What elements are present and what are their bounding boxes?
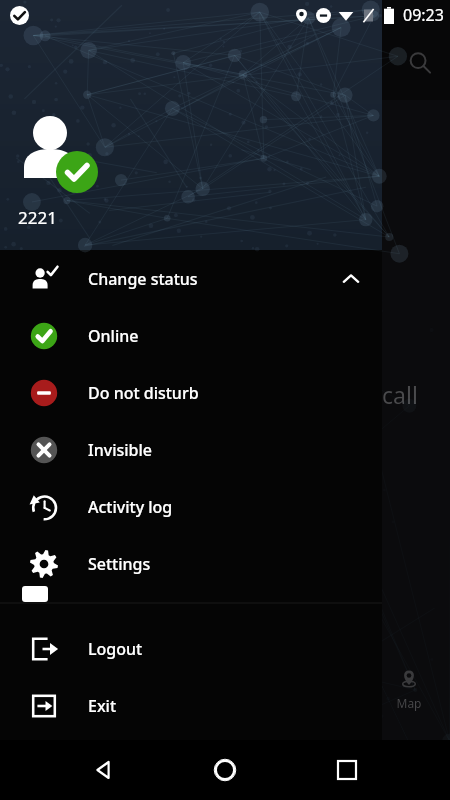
button[interactable]: Settings <box>0 535 382 592</box>
staticText: Exit <box>88 695 117 717</box>
staticText: Map <box>368 695 450 711</box>
button[interactable]: Logout <box>0 620 382 677</box>
button[interactable]: Map <box>368 662 450 724</box>
button[interactable]: Online <box>0 307 382 364</box>
staticText: 2221 <box>18 206 57 229</box>
staticText: 09:23 <box>403 4 444 26</box>
button[interactable]: Exit <box>0 677 382 734</box>
staticText: call <box>382 379 418 410</box>
button[interactable]: Home <box>200 745 250 795</box>
staticText: Activity log <box>88 496 173 518</box>
button[interactable]: Back <box>78 745 128 795</box>
button[interactable]: Search <box>400 43 440 83</box>
staticText: Logout <box>88 638 143 660</box>
staticText: Change status <box>88 268 198 290</box>
button[interactable]: Invisible <box>0 421 382 478</box>
button[interactable] <box>0 592 382 620</box>
staticText: Settings <box>88 553 151 575</box>
staticText: Online <box>88 325 139 347</box>
button[interactable]: Recents <box>322 745 372 795</box>
staticText: Invisible <box>88 439 152 461</box>
button[interactable]: Activity log <box>0 478 382 535</box>
staticText: Do not disturb <box>88 382 199 404</box>
button[interactable]: Change status <box>0 250 382 307</box>
button[interactable]: Do not disturb <box>0 364 382 421</box>
